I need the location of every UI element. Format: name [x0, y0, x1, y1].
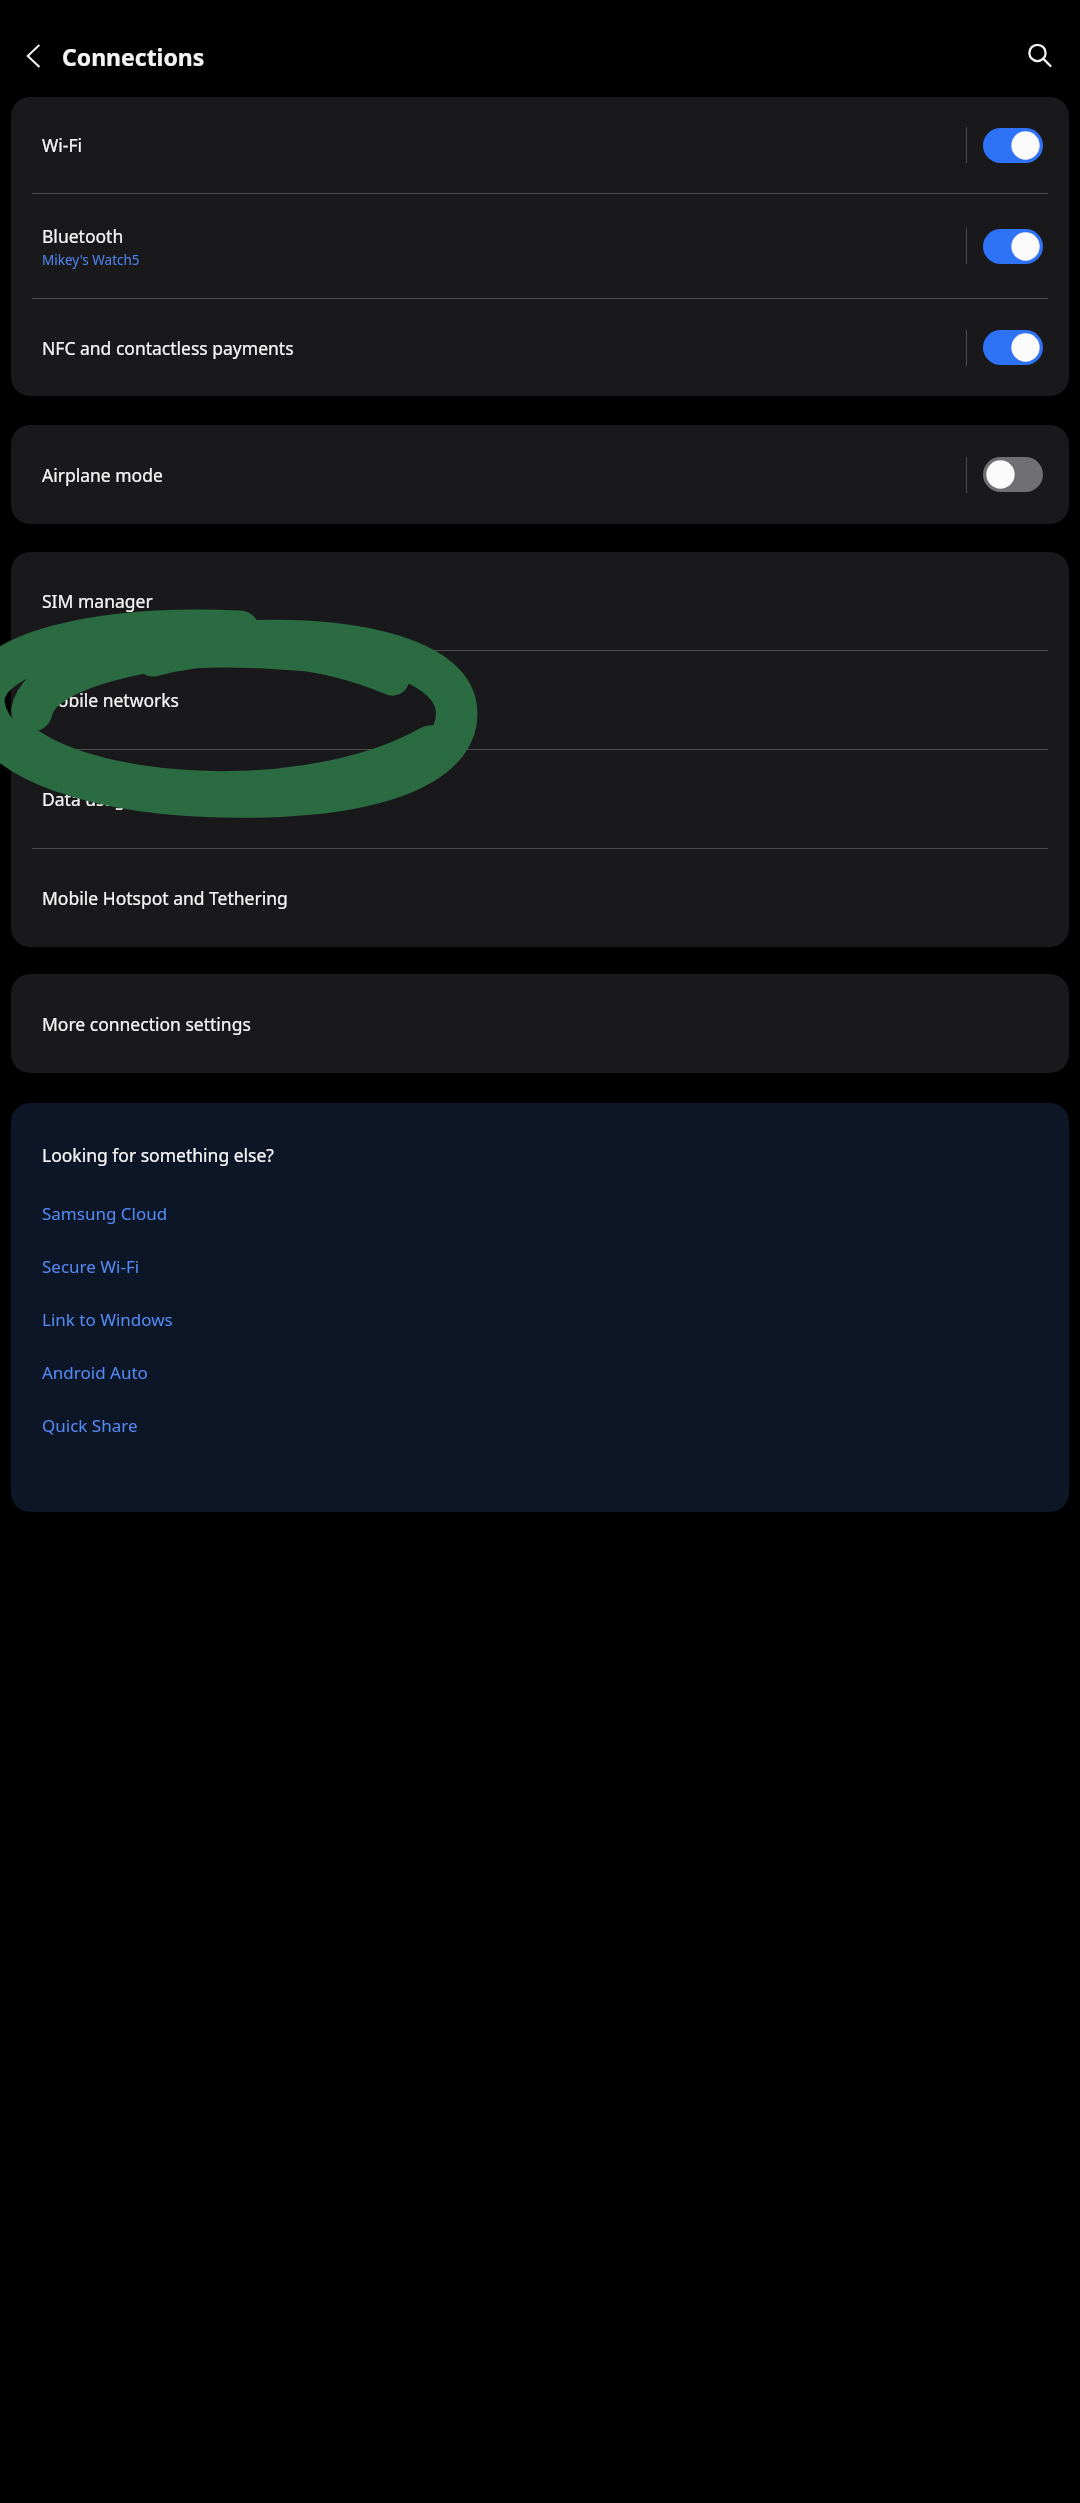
button[interactable]: Quick Share [11, 1399, 1069, 1452]
staticText: Airplane mode [42, 463, 163, 487]
button[interactable]: Bluetooth, on [983, 229, 1043, 264]
staticText: Android Auto [42, 1361, 148, 1384]
staticText: NFC and contactless payments [42, 336, 294, 360]
staticText: SIM manager [42, 589, 153, 613]
button[interactable]: Secure Wi-Fi [11, 1240, 1069, 1293]
button[interactable]: More connection settings [11, 974, 1069, 1073]
button[interactable]: Search [1014, 30, 1066, 82]
staticText: Bluetooth [42, 224, 124, 248]
staticText: More connection settings [42, 1012, 251, 1036]
staticText: Mobile Hotspot and Tethering [42, 886, 288, 910]
button[interactable]: Android Auto [11, 1346, 1069, 1399]
staticText: Looking for something else? [42, 1143, 274, 1167]
button[interactable]: Samsung Cloud [11, 1187, 1069, 1240]
staticText: Data usage [42, 787, 135, 811]
staticText: Link to Windows [42, 1308, 173, 1331]
staticText: Secure Wi-Fi [42, 1255, 140, 1278]
staticText: Wi-Fi [42, 133, 83, 157]
button[interactable]: NFC and contactless payments [11, 299, 1069, 396]
button[interactable]: Mobile networks [11, 651, 1069, 749]
button[interactable]: Wi-Fi, on [983, 128, 1043, 163]
button[interactable]: Wi-Fi [11, 97, 1069, 193]
button[interactable]: Navigate up [10, 32, 58, 80]
staticText: Samsung Cloud [42, 1202, 168, 1225]
button[interactable]: Mobile Hotspot and Tethering [11, 849, 1069, 947]
button[interactable]: Bluetooth [11, 194, 1069, 298]
button[interactable]: NFC and contactless payments, on [983, 330, 1043, 365]
button[interactable]: Data usage [11, 750, 1069, 848]
staticText: Mikey's Watch5 [42, 251, 140, 269]
staticText: Connections [62, 41, 205, 72]
button[interactable]: Airplane mode, off [983, 457, 1043, 492]
staticText: Quick Share [42, 1414, 138, 1437]
button[interactable]: Link to Windows [11, 1293, 1069, 1346]
button[interactable]: Airplane mode [11, 425, 1069, 524]
button[interactable]: SIM manager [11, 552, 1069, 650]
staticText: Mobile networks [42, 688, 179, 712]
